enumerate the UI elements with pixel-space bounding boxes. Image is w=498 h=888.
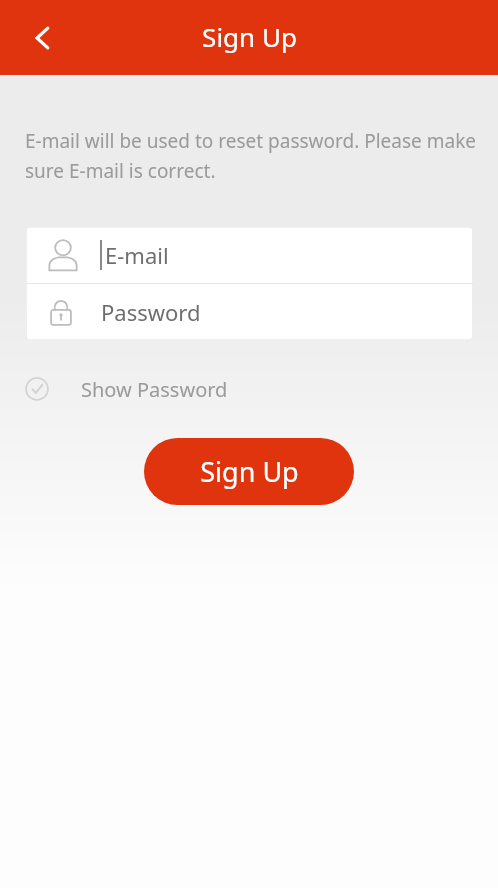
staticText: Show Password	[81, 376, 228, 403]
staticText: Password	[101, 297, 201, 327]
staticText: Sign Up	[200, 453, 299, 490]
button[interactable]: Back	[11, 6, 75, 70]
button[interactable]: Show Password	[25, 369, 228, 409]
button[interactable]: E-mail	[26, 227, 473, 283]
staticText: Sign Up	[202, 19, 297, 54]
staticText: E-mail will be used to reset password. P…	[25, 128, 478, 183]
button[interactable]: Sign Up	[144, 438, 354, 505]
staticText: E-mail	[105, 240, 169, 270]
button[interactable]: Password	[26, 284, 473, 340]
